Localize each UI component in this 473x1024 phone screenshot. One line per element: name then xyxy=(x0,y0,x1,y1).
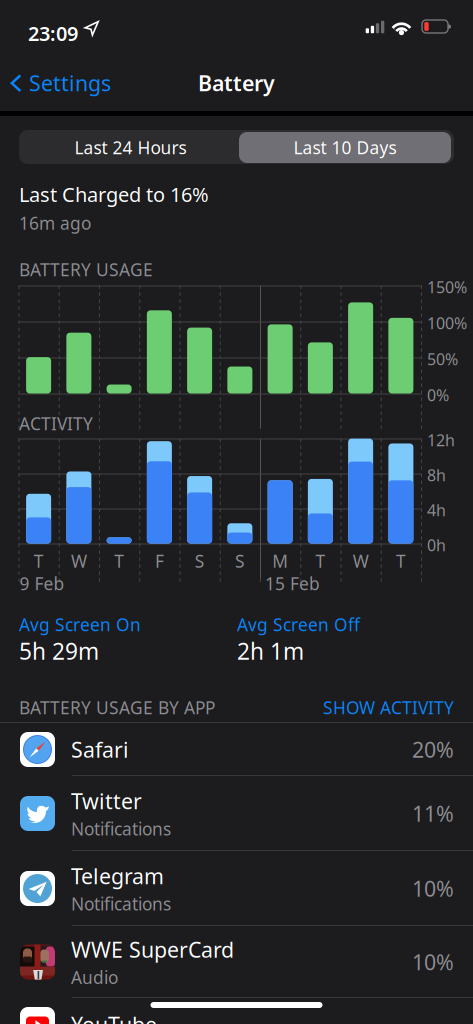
button[interactable]: SHOW ACTIVITY xyxy=(323,696,454,719)
staticText: Last Charged to 16% xyxy=(19,181,209,208)
staticText: Last 24 Hours xyxy=(74,136,186,159)
staticText: T xyxy=(34,549,44,572)
staticText: Battery xyxy=(198,69,275,97)
staticText: 100% xyxy=(427,312,467,334)
button[interactable]: Safari xyxy=(0,723,473,776)
staticText: Avg Screen On xyxy=(19,613,141,636)
button[interactable]: YouTube xyxy=(0,998,473,1024)
staticText: 20% xyxy=(412,735,454,764)
button[interactable]: Last 10 Days xyxy=(239,132,451,163)
staticText: 9 Feb xyxy=(19,572,64,595)
staticText: 16m ago xyxy=(19,212,91,235)
staticText: Twitter xyxy=(71,787,142,815)
staticText: Audio xyxy=(71,966,118,989)
staticText: 8h xyxy=(427,464,446,486)
staticText: 10% xyxy=(412,948,454,976)
staticText: 2h 1m xyxy=(237,636,304,666)
staticText: ACTIVITY xyxy=(19,412,93,435)
staticText: 0h xyxy=(427,534,446,556)
button[interactable]: WWE SuperCard xyxy=(0,926,473,998)
staticText: 12h xyxy=(427,429,455,451)
staticText: Last 10 Days xyxy=(293,136,396,159)
staticText: Avg Screen Off xyxy=(237,613,360,636)
staticText: Safari xyxy=(71,735,129,764)
staticText: 0% xyxy=(427,384,449,406)
staticText: 10% xyxy=(412,874,454,903)
staticText: S xyxy=(195,549,205,572)
staticText: SHOW ACTIVITY xyxy=(323,696,454,719)
staticText: 15 Feb xyxy=(265,572,320,595)
staticText: YouTube xyxy=(71,1010,157,1024)
staticText: F xyxy=(155,549,164,572)
staticText: 23:09 xyxy=(28,20,78,47)
button[interactable]: Twitter xyxy=(0,776,473,851)
staticText: M xyxy=(272,549,288,572)
staticText: W xyxy=(353,549,369,572)
staticText: WWE SuperCard xyxy=(71,935,234,964)
staticText: 5h 29m xyxy=(19,636,99,666)
staticText: W xyxy=(71,549,87,572)
button[interactable]: Settings xyxy=(0,61,119,105)
staticText: BATTERY USAGE BY APP xyxy=(19,696,215,719)
staticText: S xyxy=(235,549,245,572)
button[interactable]: Last 24 Hours xyxy=(22,132,239,163)
staticText: 50% xyxy=(427,348,458,370)
staticText: Telegram xyxy=(71,862,164,890)
staticText: Settings xyxy=(29,69,111,97)
staticText: BATTERY USAGE xyxy=(19,258,153,281)
staticText: Notifications xyxy=(71,817,171,840)
button[interactable]: Telegram xyxy=(0,851,473,926)
staticText: 150% xyxy=(427,276,467,298)
staticText: T xyxy=(315,549,325,572)
staticText: 11% xyxy=(412,799,454,828)
staticText: T xyxy=(396,549,406,572)
staticText: T xyxy=(114,549,124,572)
staticText: Notifications xyxy=(71,892,171,915)
staticText: 4h xyxy=(427,499,446,521)
